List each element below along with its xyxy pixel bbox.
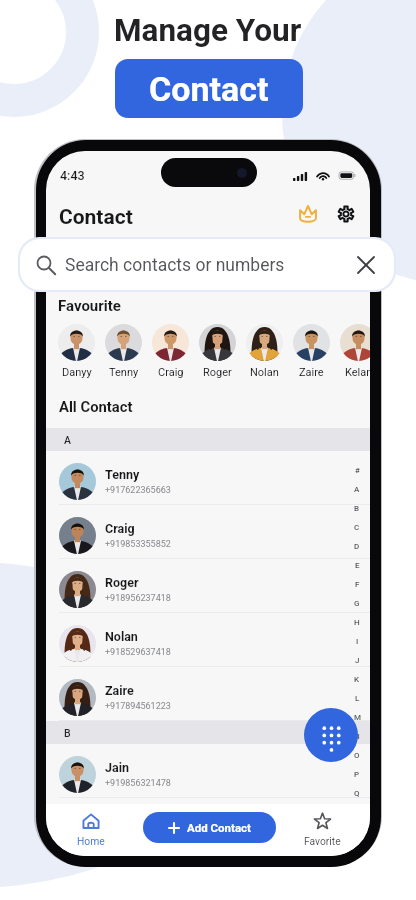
button[interactable]: Favorite bbox=[303, 804, 341, 847]
button[interactable]: Kiran bbox=[46, 798, 370, 852]
staticText: N bbox=[354, 732, 360, 741]
staticText: I bbox=[356, 637, 359, 646]
staticText: +919812345678 bbox=[105, 832, 171, 843]
staticText: F bbox=[355, 580, 360, 589]
button[interactable]: Danyy bbox=[58, 324, 95, 379]
staticText: Favourite bbox=[58, 297, 121, 315]
button[interactable]: Contact bbox=[115, 59, 303, 118]
staticText: Tenny bbox=[109, 366, 139, 379]
staticText: D bbox=[354, 542, 360, 551]
staticText: +919853355852 bbox=[105, 539, 171, 550]
staticText: M bbox=[354, 713, 361, 722]
staticText: 4:43 bbox=[60, 168, 85, 183]
staticText: +918956237418 bbox=[105, 593, 171, 604]
staticText: H bbox=[354, 618, 360, 627]
button[interactable]: Zaire bbox=[46, 667, 370, 721]
button[interactable]: Add Contact bbox=[143, 812, 276, 843]
staticText: Search contacts or numbers bbox=[65, 255, 285, 276]
staticText: E bbox=[355, 561, 360, 570]
staticText: Q bbox=[354, 789, 360, 798]
button[interactable]: Tenny bbox=[46, 451, 370, 505]
staticText: Kelan bbox=[345, 366, 370, 379]
staticText: A bbox=[64, 434, 71, 446]
staticText: L bbox=[355, 694, 360, 703]
button[interactable]: Jain bbox=[46, 744, 370, 798]
staticText: Craig bbox=[158, 366, 184, 379]
staticText: Zaire bbox=[105, 683, 134, 698]
button[interactable]: Tenny bbox=[105, 324, 142, 379]
staticText: Zaire bbox=[299, 366, 324, 379]
staticText: Roger bbox=[105, 575, 139, 590]
button[interactable]: Craig bbox=[152, 324, 189, 379]
staticText: Contact bbox=[149, 69, 269, 109]
button[interactable]: Kelan bbox=[340, 324, 370, 379]
staticText: +919856321478 bbox=[105, 778, 171, 789]
button[interactable]: Craig bbox=[46, 505, 370, 559]
staticText: Nolan bbox=[250, 366, 279, 379]
staticText: J bbox=[355, 656, 360, 665]
staticText: +918529637418 bbox=[105, 647, 171, 658]
staticText: O bbox=[354, 751, 360, 760]
staticText: Home bbox=[77, 835, 105, 847]
staticText: B bbox=[64, 727, 71, 739]
staticText: Manage Your bbox=[114, 12, 302, 49]
button[interactable]: Roger bbox=[199, 324, 236, 379]
staticText: Favorite bbox=[304, 835, 341, 847]
staticText: G bbox=[354, 599, 360, 608]
staticText: Add Contact bbox=[187, 821, 251, 834]
staticText: +917622365663 bbox=[105, 485, 171, 496]
staticText: C bbox=[354, 523, 360, 532]
button[interactable]: Nolan bbox=[46, 613, 370, 667]
staticText: Roger bbox=[203, 366, 232, 379]
staticText: Danyy bbox=[62, 366, 92, 379]
staticText: Nolan bbox=[105, 629, 138, 644]
staticText: # bbox=[355, 466, 360, 475]
staticText: Jain bbox=[105, 760, 129, 775]
button[interactable]: Roger bbox=[46, 559, 370, 613]
staticText: A bbox=[354, 485, 360, 494]
button[interactable]: Settings bbox=[332, 200, 360, 228]
button[interactable]: Dial pad bbox=[304, 708, 358, 762]
staticText: B bbox=[354, 504, 360, 513]
staticText: +917894561223 bbox=[105, 701, 171, 712]
button[interactable]: Premium bbox=[294, 200, 322, 228]
staticText: Contact bbox=[59, 205, 133, 230]
staticText: Tenny bbox=[105, 467, 140, 482]
button[interactable]: Nolan bbox=[246, 324, 283, 379]
button[interactable]: Clear search bbox=[354, 253, 378, 277]
staticText: P bbox=[354, 770, 360, 779]
staticText: All Contact bbox=[59, 398, 133, 415]
staticText: K bbox=[354, 675, 360, 684]
staticText: Craig bbox=[105, 521, 135, 536]
button[interactable]: Search contacts or numbers bbox=[20, 239, 394, 290]
button[interactable]: Home bbox=[72, 804, 110, 847]
button[interactable]: Zaire bbox=[293, 324, 330, 379]
